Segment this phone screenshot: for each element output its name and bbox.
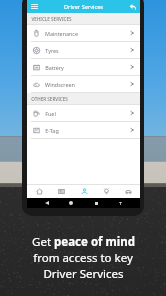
staticText: Get peace of mind	[32, 234, 135, 250]
button[interactable]: Fuel	[27, 105, 140, 121]
button[interactable]: Home	[29, 185, 49, 198]
staticText: Battery	[45, 64, 64, 71]
staticText: Driver Services	[43, 266, 124, 282]
staticText: Maintenance	[45, 30, 78, 37]
staticText: Driver Services	[64, 3, 103, 11]
button[interactable]: Tyres	[27, 42, 140, 58]
button[interactable]: Battery	[27, 59, 140, 75]
button[interactable]: Back	[42, 198, 52, 208]
button[interactable]: Keyboard	[115, 198, 125, 208]
button[interactable]: Back	[127, 1, 138, 12]
button[interactable]: Tips	[96, 185, 116, 198]
staticText: VEHICLE SERVICES	[31, 16, 72, 22]
staticText: from access to key	[33, 250, 133, 266]
button[interactable]: News	[51, 185, 71, 198]
button[interactable]: Menu	[29, 1, 40, 12]
button[interactable]: Windscreen	[27, 76, 140, 92]
button[interactable]: Home	[66, 198, 76, 208]
button[interactable]: Maintenance	[27, 25, 140, 41]
staticText: Tyres	[45, 47, 59, 54]
button[interactable]: Profile	[74, 185, 94, 198]
staticText: E-Tag	[45, 127, 59, 134]
button[interactable]: Recents	[91, 198, 101, 208]
button[interactable]: E-Tag	[27, 122, 140, 138]
staticText: Fuel	[45, 110, 56, 117]
staticText: Windscreen	[45, 81, 75, 88]
staticText: OTHER SERVICES	[31, 96, 68, 102]
button[interactable]: Vehicle	[118, 185, 138, 198]
